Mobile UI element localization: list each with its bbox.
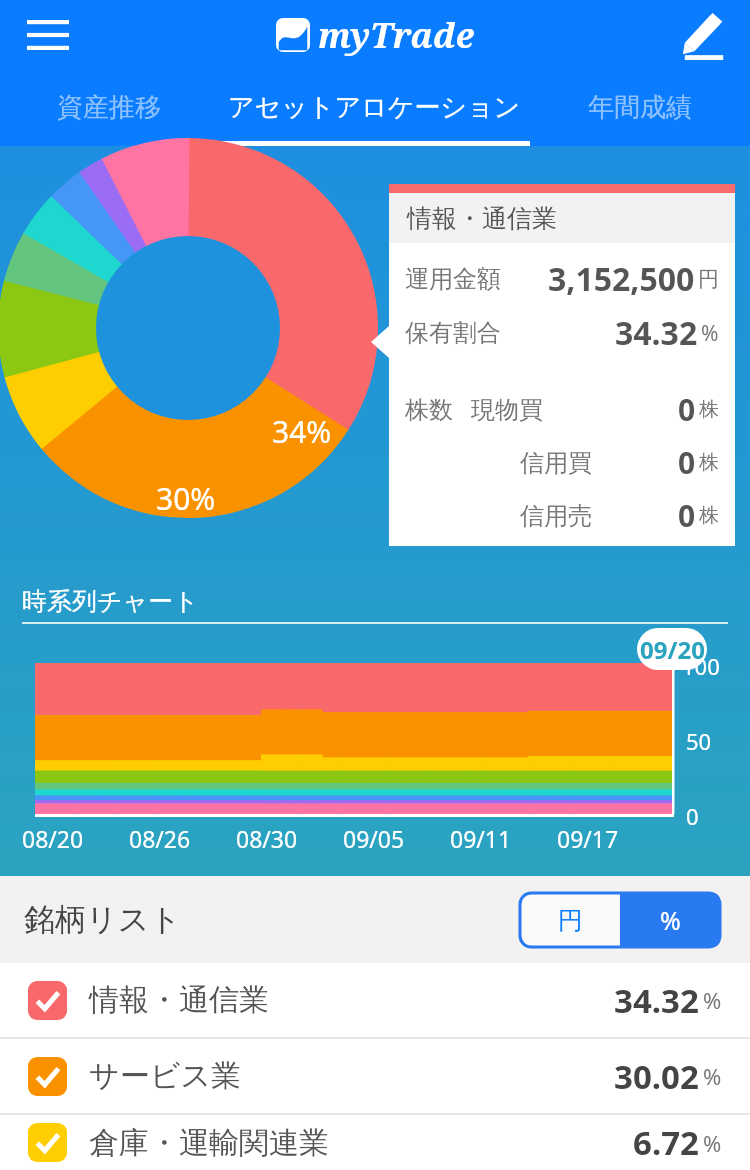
staticText: % <box>703 1061 722 1091</box>
button[interactable]: Menu <box>18 5 78 65</box>
staticText: 34.32 <box>615 311 698 355</box>
staticText: 信用買 <box>520 448 592 478</box>
staticText: サービス業 <box>89 1057 242 1095</box>
button[interactable]: 倉庫・運輸関連業 <box>0 1115 750 1170</box>
staticText: % <box>701 319 719 348</box>
staticText: 3,152,500 <box>548 257 695 301</box>
staticText: 50 <box>686 726 712 756</box>
staticText: % <box>703 985 722 1015</box>
staticText: 年間成績 <box>588 91 692 124</box>
staticText: 0 <box>678 495 696 536</box>
staticText: 円 <box>558 905 583 936</box>
staticText: 0 <box>678 442 696 483</box>
staticText: 円 <box>698 266 719 292</box>
staticText: 株数 <box>405 395 453 425</box>
staticText: 30.02 <box>614 1054 699 1099</box>
staticText: 時系列チャート <box>22 586 199 617</box>
staticText: 09/11 <box>450 823 512 854</box>
button[interactable]: サービス業 <box>0 1039 750 1113</box>
staticText: 情報・通信業 <box>407 203 557 234</box>
staticText: 保有割合 <box>405 318 501 348</box>
button[interactable]: Edit <box>672 3 736 67</box>
staticText: 現物買 <box>471 395 543 425</box>
staticText: 100 <box>682 651 720 681</box>
staticText: 0 <box>678 389 696 430</box>
staticText: 運用金額 <box>405 264 501 294</box>
staticText: 株 <box>699 397 719 422</box>
staticText: 資産推移 <box>57 91 161 124</box>
staticText: 信用売 <box>520 501 592 531</box>
staticText: 09/17 <box>557 823 619 854</box>
button[interactable]: 資産推移 <box>0 69 218 146</box>
staticText: 09/20 <box>640 633 705 666</box>
staticText: % <box>660 903 681 937</box>
staticText: 0 <box>686 801 699 831</box>
staticText: 34.32 <box>614 978 699 1023</box>
button[interactable]: アセットアロケーション <box>218 69 530 146</box>
staticText: 09/05 <box>343 823 405 854</box>
staticText: 銘柄リスト <box>24 900 182 939</box>
staticText: myTrade <box>318 12 474 58</box>
staticText: % <box>703 1128 722 1158</box>
staticText: 情報・通信業 <box>89 981 269 1019</box>
staticText: アセットアロケーション <box>228 91 521 124</box>
button[interactable]: 円 <box>520 893 620 947</box>
staticText: 08/20 <box>22 823 84 854</box>
staticText: 株 <box>699 450 719 475</box>
staticText: 倉庫・運輸関連業 <box>89 1124 329 1162</box>
staticText: 34% <box>272 411 332 452</box>
staticText: 株 <box>699 503 719 528</box>
button[interactable]: 年間成績 <box>530 69 750 146</box>
button[interactable]: % <box>620 893 720 947</box>
button[interactable]: 情報・通信業 <box>0 963 750 1037</box>
staticText: 08/30 <box>236 823 298 854</box>
staticText: 6.72 <box>633 1120 699 1165</box>
staticText: 30% <box>156 478 216 519</box>
staticText: 08/26 <box>129 823 191 854</box>
